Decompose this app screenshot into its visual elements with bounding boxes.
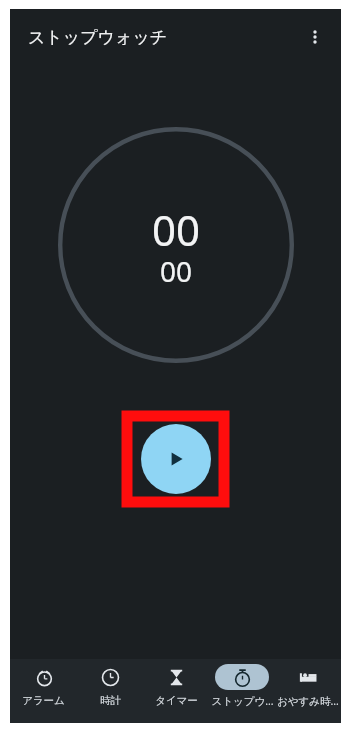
button[interactable]: タイマー [143, 659, 209, 723]
staticText: アラーム [22, 694, 65, 707]
button[interactable]: Start [141, 424, 211, 494]
button[interactable]: おやすみ時… [275, 659, 341, 723]
staticText: タイマー [155, 694, 198, 707]
button[interactable]: ストップウ… [209, 659, 275, 723]
staticText: 時計 [100, 694, 121, 707]
button[interactable]: 時計 [77, 659, 143, 723]
button[interactable]: More options [295, 17, 335, 57]
staticText: ストップウォッチ [28, 27, 168, 48]
staticText: ストップウ… [211, 694, 274, 708]
staticText: 00 [160, 252, 193, 290]
button[interactable]: アラーム [10, 659, 77, 723]
staticText: おやすみ時… [277, 694, 339, 708]
staticText: 00 [152, 201, 201, 258]
